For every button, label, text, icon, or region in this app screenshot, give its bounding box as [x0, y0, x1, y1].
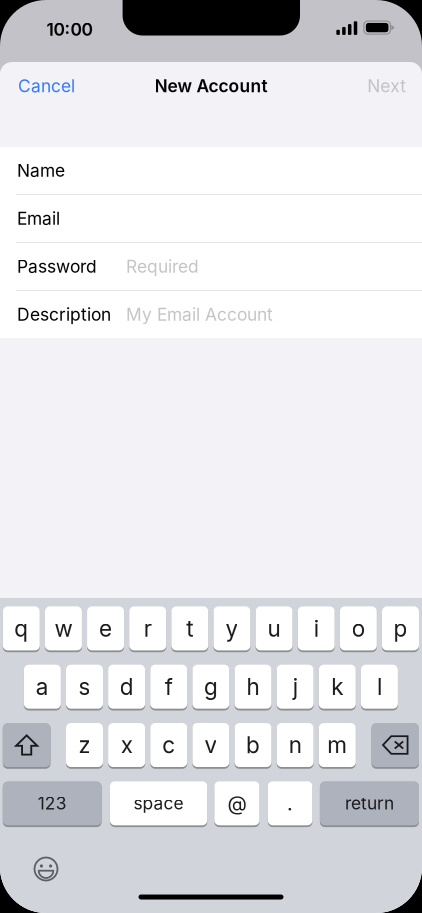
- staticText: 10:00: [46, 19, 92, 40]
- staticText: d: [120, 673, 134, 700]
- button[interactable]: p: [382, 606, 419, 652]
- button[interactable]: t: [171, 606, 208, 652]
- staticText: My Email Account: [126, 304, 273, 325]
- button[interactable]: h: [234, 664, 271, 710]
- staticText: Cancel: [18, 75, 75, 96]
- staticText: b: [246, 731, 260, 759]
- staticText: m: [327, 731, 347, 759]
- button[interactable]: Emoji: [26, 849, 66, 889]
- button[interactable]: Cancel: [18, 64, 90, 108]
- button[interactable]: n: [277, 723, 314, 769]
- button[interactable]: Description: [0, 291, 422, 338]
- button[interactable]: s: [66, 664, 103, 710]
- staticText: New Account: [154, 75, 267, 96]
- button[interactable]: c: [150, 723, 187, 769]
- staticText: x: [121, 731, 133, 759]
- staticText: p: [393, 615, 407, 642]
- button[interactable]: m: [319, 723, 356, 769]
- staticText: j: [293, 673, 298, 700]
- button[interactable]: @: [214, 781, 259, 827]
- button[interactable]: Password: [0, 243, 422, 290]
- staticText: n: [289, 731, 302, 759]
- staticText: q: [14, 615, 28, 642]
- button[interactable]: r: [129, 606, 166, 652]
- button[interactable]: k: [319, 664, 356, 710]
- staticText: Password: [17, 256, 97, 277]
- staticText: k: [331, 673, 343, 700]
- staticText: t: [186, 615, 193, 642]
- staticText: u: [268, 615, 281, 642]
- staticText: c: [162, 731, 175, 759]
- button[interactable]: x: [108, 723, 145, 769]
- button[interactable]: u: [256, 606, 293, 652]
- button[interactable]: q: [3, 606, 40, 652]
- button[interactable]: Next: [346, 64, 406, 108]
- staticText: Required: [126, 256, 199, 277]
- staticText: i: [314, 615, 319, 642]
- button[interactable]: o: [340, 606, 377, 652]
- button[interactable]: l: [361, 664, 398, 710]
- button[interactable]: w: [45, 606, 82, 652]
- staticText: return: [345, 793, 394, 814]
- button[interactable]: Email: [0, 195, 422, 242]
- staticText: e: [99, 615, 112, 642]
- staticText: l: [377, 673, 382, 700]
- staticText: .: [287, 791, 293, 815]
- button[interactable]: space: [110, 781, 207, 827]
- staticText: y: [225, 615, 238, 642]
- button[interactable]: g: [192, 664, 229, 710]
- staticText: space: [134, 793, 184, 814]
- button[interactable]: j: [277, 664, 314, 710]
- button[interactable]: .: [268, 781, 312, 827]
- staticText: o: [352, 615, 365, 642]
- staticText: h: [246, 673, 259, 700]
- staticText: g: [204, 673, 218, 700]
- button[interactable]: v: [192, 723, 229, 769]
- staticText: Description: [17, 304, 111, 325]
- button[interactable]: b: [234, 723, 271, 769]
- button[interactable]: i: [298, 606, 335, 652]
- button[interactable]: z: [66, 723, 103, 769]
- staticText: v: [204, 731, 217, 759]
- staticText: Email: [17, 208, 60, 229]
- button[interactable]: Delete: [371, 723, 419, 769]
- button[interactable]: a: [24, 664, 61, 710]
- staticText: Name: [17, 160, 65, 181]
- button[interactable]: 123: [3, 781, 102, 827]
- button[interactable]: f: [150, 664, 187, 710]
- button[interactable]: return: [320, 781, 419, 827]
- staticText: z: [78, 731, 90, 759]
- staticText: s: [78, 673, 90, 700]
- staticText: 123: [38, 793, 67, 814]
- staticText: a: [36, 673, 49, 700]
- staticText: @: [227, 791, 246, 815]
- button[interactable]: d: [108, 664, 145, 710]
- button[interactable]: Name: [0, 147, 422, 194]
- button[interactable]: Shift: [3, 723, 50, 769]
- button[interactable]: y: [213, 606, 250, 652]
- staticText: Next: [367, 75, 406, 96]
- button[interactable]: e: [87, 606, 124, 652]
- staticText: w: [54, 615, 72, 642]
- staticText: r: [144, 615, 152, 642]
- staticText: f: [165, 673, 173, 700]
